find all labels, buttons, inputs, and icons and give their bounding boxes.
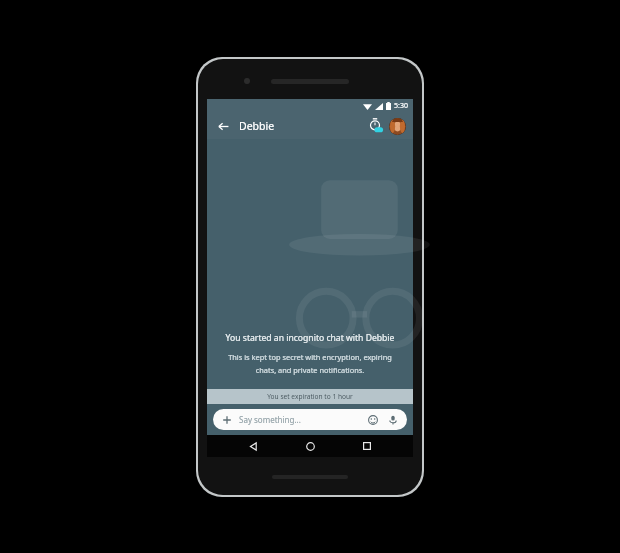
button[interactable]: Recent apps bbox=[356, 435, 378, 457]
button[interactable]: Emoji bbox=[366, 413, 380, 427]
button[interactable]: Back bbox=[214, 117, 232, 135]
button[interactable]: Back bbox=[242, 435, 264, 457]
button[interactable]: Home bbox=[299, 435, 321, 457]
button[interactable]: Expiring messages timer bbox=[368, 118, 385, 135]
staticText: You started an incognito chat with Debbi… bbox=[213, 332, 407, 344]
staticText: chats, and private notifications. bbox=[215, 365, 405, 375]
button[interactable]: Add attachment bbox=[213, 409, 407, 430]
staticText: You set expiration to 1 hour bbox=[267, 392, 353, 401]
button[interactable]: Voice message bbox=[386, 413, 400, 427]
staticText: 5:30 bbox=[394, 101, 408, 111]
button[interactable]: Add attachment bbox=[220, 413, 234, 427]
button[interactable]: Debbie bbox=[239, 119, 275, 133]
staticText: This is kept top secret with encryption,… bbox=[215, 352, 405, 362]
button[interactable]: You set expiration to 1 hour bbox=[207, 389, 413, 404]
button[interactable]: Profile photo bbox=[389, 118, 406, 135]
staticText: Say something... bbox=[239, 414, 301, 425]
